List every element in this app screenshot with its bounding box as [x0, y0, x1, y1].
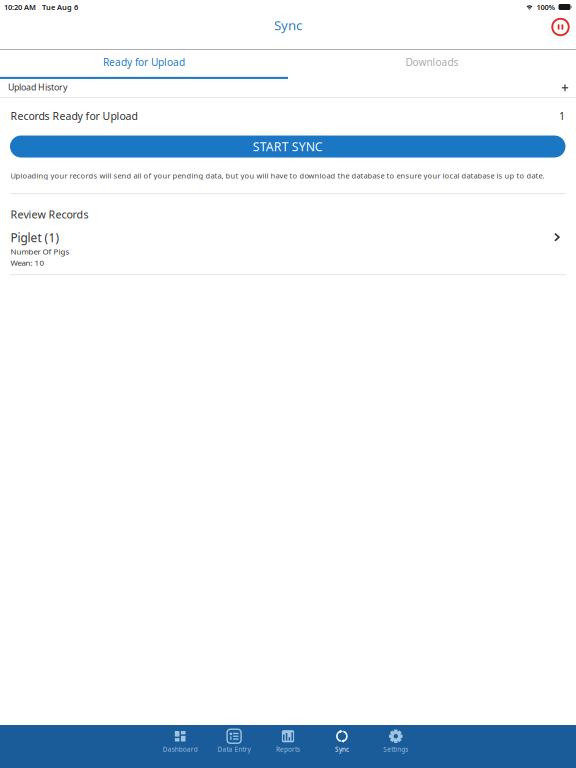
button[interactable]: Dashboard	[153, 725, 207, 768]
button[interactable]: Data Entry	[207, 725, 261, 768]
staticText: 1	[559, 109, 565, 123]
button[interactable]: Downloads	[288, 50, 576, 77]
button[interactable]: Sync	[315, 725, 369, 768]
staticText: Tue Aug 6	[36, 2, 78, 12]
staticText: Piglet (1)	[10, 230, 59, 246]
staticText: Records Ready for Upload	[10, 109, 137, 123]
button[interactable]: START SYNC	[10, 135, 565, 157]
staticText: Sync	[274, 16, 302, 34]
staticText: Dashboard	[163, 745, 198, 754]
staticText: 10:20 AM	[4, 2, 36, 12]
button[interactable]: Ready for Upload	[0, 50, 288, 77]
button[interactable]: Pause sync	[549, 16, 571, 38]
staticText: Review Records	[10, 207, 88, 222]
staticText: Ready for Upload	[103, 55, 185, 69]
staticText: Number Of Pigs	[10, 246, 69, 257]
staticText: 100%	[536, 2, 555, 12]
staticText: Upload History	[8, 81, 67, 93]
staticText: Sync	[335, 745, 349, 754]
staticText: Uploading your records will send all of …	[10, 170, 544, 181]
staticText: Downloads	[405, 55, 458, 69]
button[interactable]: Piglet (1)	[0, 222, 576, 268]
button[interactable]: Upload History	[0, 77, 576, 97]
staticText: Reports	[276, 745, 300, 754]
staticText: START SYNC	[253, 138, 323, 155]
staticText: Settings	[383, 745, 408, 754]
button[interactable]: Settings	[369, 725, 423, 768]
staticText: Wean: 10	[10, 257, 44, 268]
staticText: Data Entry	[218, 745, 251, 754]
button[interactable]: Reports	[261, 725, 315, 768]
